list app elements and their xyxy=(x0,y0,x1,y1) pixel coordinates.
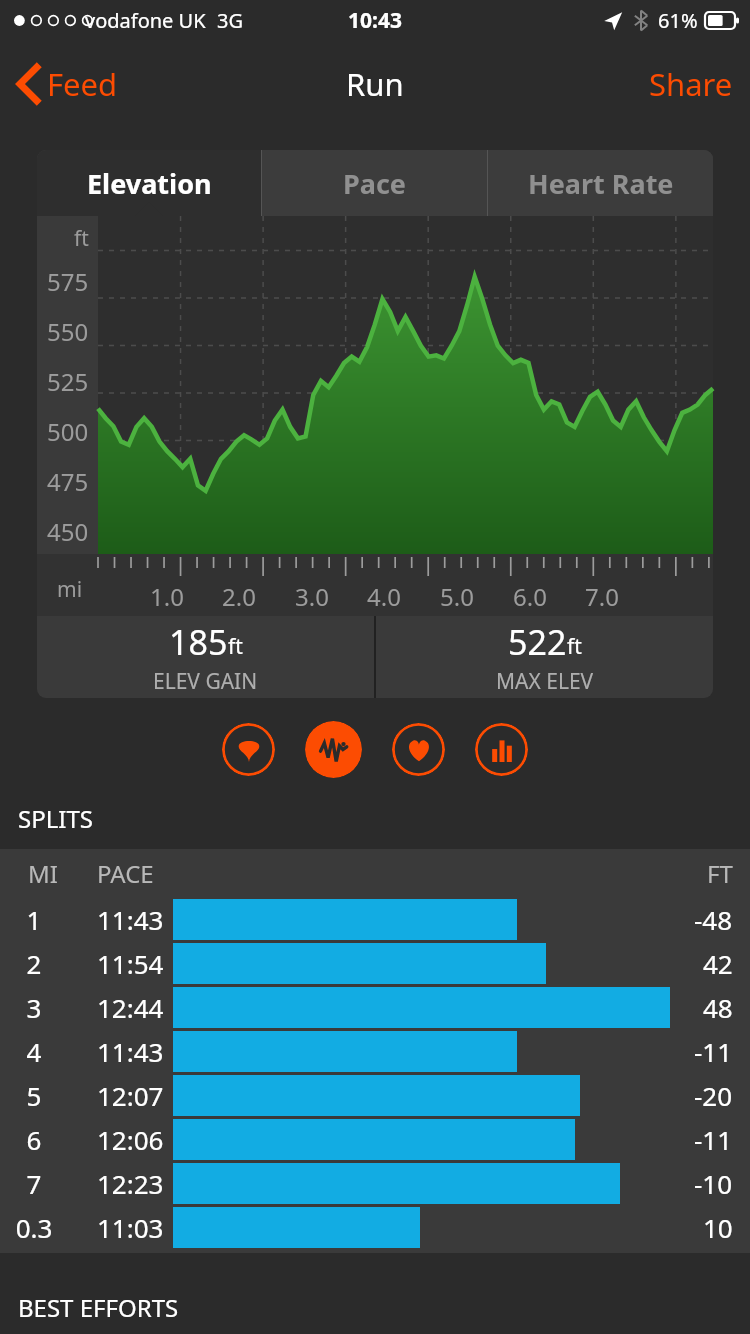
staticText: 450 xyxy=(47,515,89,548)
staticText: 522 xyxy=(508,619,567,665)
staticText: BEST EFFORTS xyxy=(18,1291,179,1324)
button[interactable]: Share xyxy=(644,55,738,113)
staticText: 12:06 xyxy=(97,1122,164,1157)
button[interactable]: 2 xyxy=(0,941,750,985)
staticText: 3.0 xyxy=(295,580,329,613)
button[interactable]: Heart rate xyxy=(392,723,445,776)
button[interactable]: 7 xyxy=(0,1161,750,1205)
staticText: 11:03 xyxy=(97,1210,164,1245)
staticText: 61% xyxy=(658,7,698,34)
staticText: 550 xyxy=(47,315,89,348)
staticText: 2 xyxy=(0,946,68,981)
staticText: Share xyxy=(649,63,733,105)
staticText: 48 xyxy=(703,990,733,1025)
staticText: -20 xyxy=(694,1078,733,1113)
button[interactable]: 3 xyxy=(0,985,750,1029)
staticText: vodafone UK xyxy=(85,7,206,34)
staticText: 185 xyxy=(169,619,228,665)
staticText: -11 xyxy=(694,1034,733,1069)
staticText: 7 xyxy=(0,1166,68,1201)
staticText: 6.0 xyxy=(513,580,547,613)
staticText: ft xyxy=(74,224,89,253)
staticText: ft xyxy=(567,632,582,661)
staticText: 1.0 xyxy=(150,580,184,613)
button[interactable]: Map xyxy=(222,723,275,776)
staticText: 7.0 xyxy=(585,580,619,613)
staticText: Feed xyxy=(47,63,118,105)
staticText: 11:43 xyxy=(97,902,164,937)
button[interactable]: Elevation xyxy=(305,721,362,778)
staticText: ft xyxy=(228,632,243,661)
button[interactable]: Feed xyxy=(12,55,123,113)
button[interactable]: 0.3 xyxy=(0,1205,750,1249)
staticText: 10 xyxy=(703,1210,733,1245)
staticText: 12:07 xyxy=(97,1078,164,1113)
staticText: Heart Rate xyxy=(528,165,674,202)
staticText: -11 xyxy=(694,1122,733,1157)
staticText: 11:43 xyxy=(97,1034,164,1069)
staticText: 525 xyxy=(47,365,89,398)
staticText: Run xyxy=(346,63,404,105)
staticText: ELEV GAIN xyxy=(153,667,258,696)
staticText: mi xyxy=(57,575,83,604)
button[interactable]: 6 xyxy=(0,1117,750,1161)
staticText: 10:43 xyxy=(348,6,402,35)
button[interactable]: 522 xyxy=(376,616,713,698)
staticText: PACE xyxy=(97,857,154,890)
staticText: 475 xyxy=(47,465,89,498)
staticText: 0.3 xyxy=(0,1210,68,1245)
staticText: FT xyxy=(707,857,733,890)
staticText: 500 xyxy=(47,415,89,448)
staticText: -10 xyxy=(694,1166,733,1201)
button[interactable]: 1 xyxy=(0,897,750,941)
staticText: 6 xyxy=(0,1122,68,1157)
button[interactable]: 185 xyxy=(37,616,374,698)
staticText: 12:23 xyxy=(97,1166,164,1201)
staticText: -48 xyxy=(694,902,733,937)
staticText: 4 xyxy=(0,1034,68,1069)
staticText: 11:54 xyxy=(97,946,164,981)
button[interactable]: 4 xyxy=(0,1029,750,1073)
staticText: 3G xyxy=(217,7,243,34)
staticText: 575 xyxy=(47,265,89,298)
button[interactable]: Splits xyxy=(475,723,528,776)
staticText: Elevation xyxy=(87,165,212,202)
staticText: 3 xyxy=(0,990,68,1025)
staticText: Pace xyxy=(343,165,406,202)
staticText: 42 xyxy=(703,946,733,981)
staticText: SPLITS xyxy=(18,802,93,835)
staticText: 5 xyxy=(0,1078,68,1113)
staticText: 5.0 xyxy=(440,580,474,613)
staticText: 2.0 xyxy=(222,580,256,613)
button[interactable]: Elevation xyxy=(37,150,261,216)
staticText: MI xyxy=(28,857,58,890)
button[interactable]: Heart Rate xyxy=(488,150,713,216)
staticText: 12:44 xyxy=(97,990,164,1025)
button[interactable]: Pace xyxy=(262,150,487,216)
button[interactable]: 5 xyxy=(0,1073,750,1117)
staticText: MAX ELEV xyxy=(496,667,594,696)
staticText: 4.0 xyxy=(367,580,401,613)
staticText: 1 xyxy=(0,902,68,937)
